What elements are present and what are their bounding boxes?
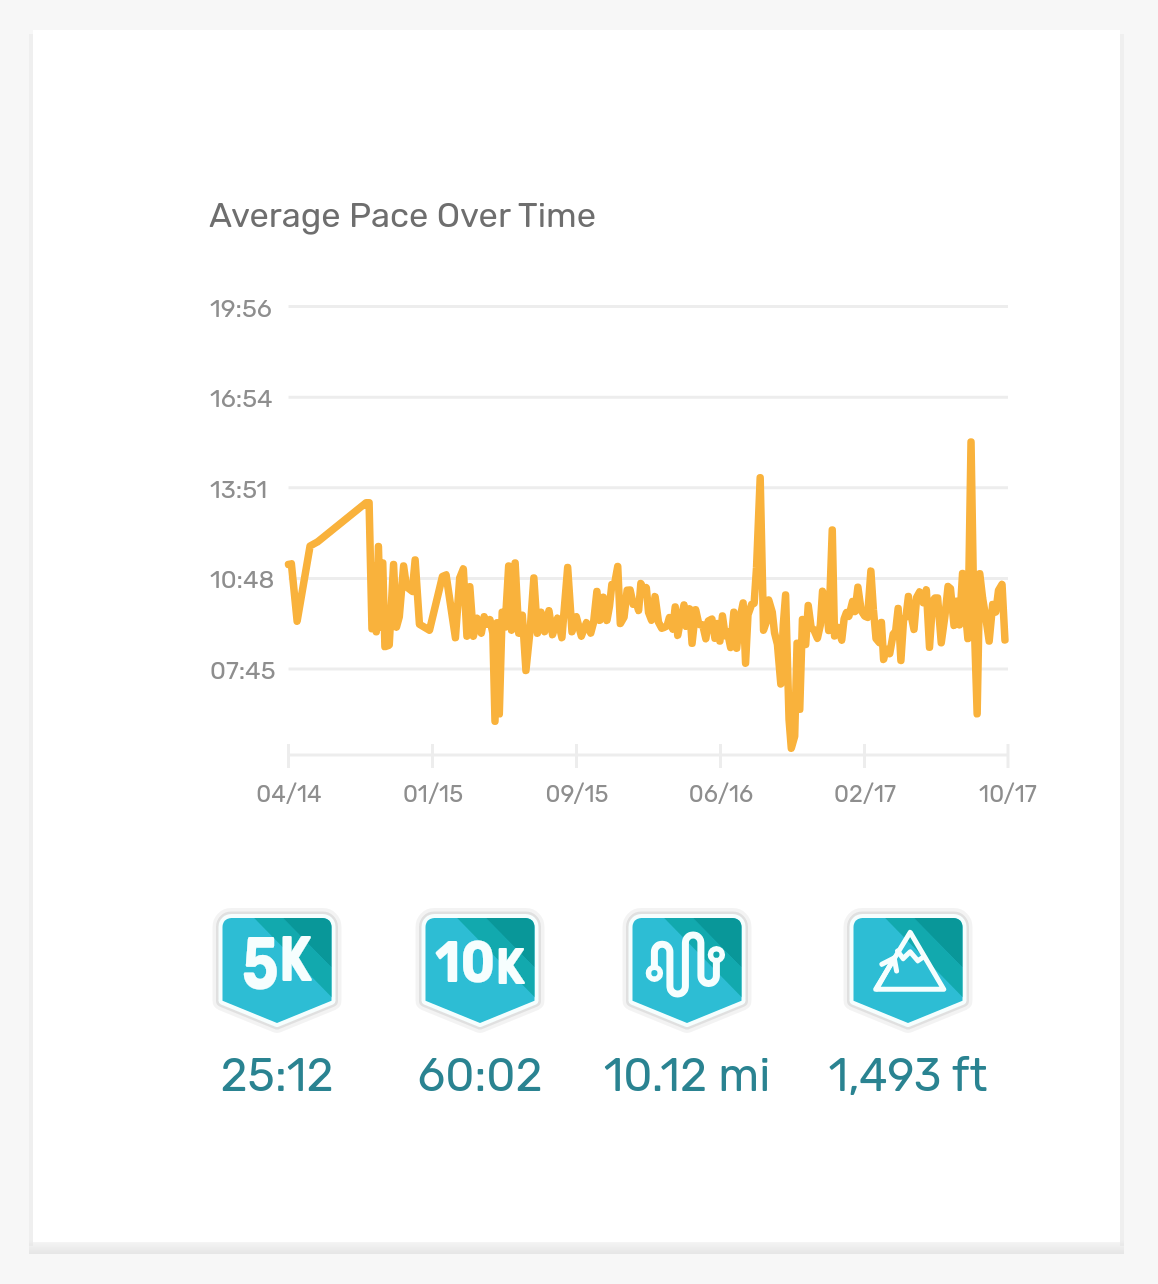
staticText: 13:51 <box>210 475 268 505</box>
staticText: 10 <box>435 928 496 997</box>
staticText: K <box>496 937 526 997</box>
staticText: 09/15 <box>507 780 647 1284</box>
staticText: 5 <box>242 921 279 997</box>
staticText: K <box>279 922 313 997</box>
button[interactable]: 5K badge <box>162 906 392 1096</box>
staticText: 25:12 <box>162 1048 392 1103</box>
staticText: 10:48 <box>210 565 275 595</box>
staticText: 07:45 <box>210 656 276 686</box>
staticText: 16:54 <box>210 384 273 414</box>
staticText: 10.12 mi <box>572 1048 802 1103</box>
staticText: 06/16 <box>651 780 791 1284</box>
button[interactable]: Elevation badge <box>793 906 1023 1096</box>
button[interactable]: 10K badge <box>365 906 595 1096</box>
staticText: 10/17 <box>938 780 1078 1284</box>
staticText: 02/17 <box>795 780 935 1284</box>
staticText: 1,493 ft <box>793 1048 1023 1103</box>
staticText: Average Pace Over Time <box>209 195 597 236</box>
button[interactable]: Distance badge <box>572 906 802 1096</box>
staticText: 19:56 <box>210 294 272 324</box>
staticText: 01/15 <box>363 780 503 1284</box>
staticText: 04/14 <box>219 780 359 1284</box>
staticText: 60:02 <box>365 1048 595 1103</box>
